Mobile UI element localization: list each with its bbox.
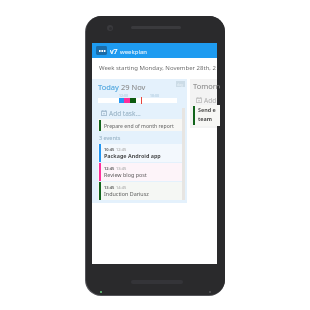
button[interactable]: 10:45 <box>98 144 182 162</box>
button[interactable]: Send e team <box>193 105 220 126</box>
staticText: Prepare end of month report <box>104 122 174 129</box>
staticText: Send e team <box>198 106 216 123</box>
staticText: Add task... <box>109 109 141 118</box>
staticText: Week starting Monday, November 28th, 2 <box>99 64 216 72</box>
staticText: 14:45 <box>116 185 127 190</box>
button[interactable]: Menu <box>96 46 107 55</box>
staticText: Review blog post <box>104 171 147 178</box>
button[interactable]: Prepare end of month report <box>98 119 182 131</box>
button[interactable]: 12:45 <box>98 163 182 181</box>
staticText: v7 <box>110 47 118 57</box>
staticText: 13:45 <box>104 185 115 190</box>
staticText: Add task... <box>204 96 217 104</box>
staticText: Tomorrow <box>193 81 220 91</box>
button[interactable]: Add task... <box>92 108 187 118</box>
staticText: 12:00 <box>119 93 128 98</box>
staticText: 13:45 <box>116 166 127 171</box>
staticText: Package Android app <box>104 152 161 159</box>
staticText: 10:45 <box>104 147 115 152</box>
staticText: 3 events <box>99 134 121 141</box>
staticText: day <box>177 82 184 87</box>
button[interactable]: Day options <box>176 81 185 87</box>
staticText: 12:45 <box>104 166 115 171</box>
staticText: 12:45 <box>116 147 127 152</box>
staticText: 18:00 <box>150 93 159 98</box>
button[interactable]: Menu <box>92 43 217 58</box>
button[interactable]: Add task... <box>190 96 217 104</box>
staticText: Today <box>98 82 119 92</box>
staticText: 29 Nov <box>121 82 146 92</box>
staticText: Induction Dariusz <box>104 190 149 197</box>
staticText: weekplan <box>120 48 148 56</box>
button[interactable]: 13:45 <box>98 182 182 200</box>
